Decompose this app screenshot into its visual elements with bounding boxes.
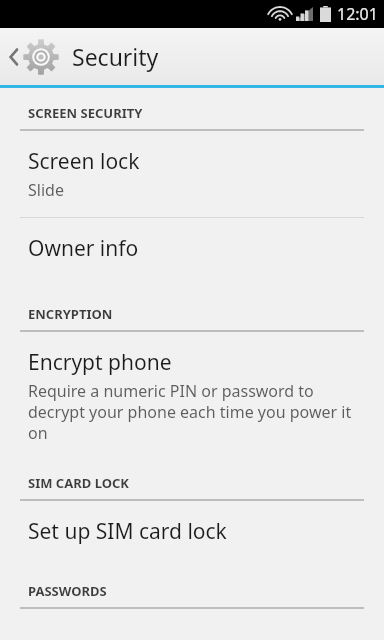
staticText: ENCRYPTION (28, 305, 113, 323)
staticText: PASSWORDS (28, 582, 107, 600)
staticText: Owner info (28, 234, 139, 263)
button[interactable]: Set up SIM card lock (0, 501, 384, 562)
button[interactable]: Navigate up (0, 30, 64, 84)
button[interactable]: Owner info (0, 218, 384, 279)
staticText: Encrypt phone (28, 348, 172, 377)
staticText: Security (72, 41, 159, 72)
staticText: SIM CARD LOCK (28, 474, 129, 492)
button[interactable]: Screen lock (0, 131, 384, 217)
staticText: Slide (28, 179, 64, 201)
button[interactable]: Encrypt phone (0, 332, 384, 460)
staticText: 12:01 (337, 3, 378, 25)
staticText: SCREEN SECURITY (28, 104, 143, 122)
staticText: Set up SIM card lock (28, 517, 227, 546)
staticText: Screen lock (28, 147, 140, 176)
staticText: Require a numeric PIN or password to dec… (28, 380, 360, 444)
